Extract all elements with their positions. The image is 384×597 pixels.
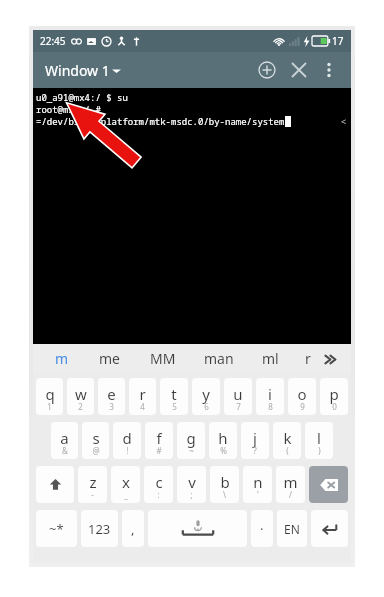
staticText: root@mx4:/ #: [36, 103, 101, 115]
button[interactable]: EN: [277, 510, 307, 547]
staticText: 6: [204, 401, 209, 412]
staticText: #: [156, 445, 162, 456]
button[interactable]: q: [36, 378, 63, 415]
staticText: k: [283, 428, 292, 448]
button[interactable]: r: [303, 346, 313, 371]
button[interactable]: l: [305, 422, 333, 459]
staticText: x: [122, 472, 130, 492]
staticText: a: [60, 428, 69, 448]
button[interactable]: MM: [148, 346, 178, 371]
staticText: %: [220, 445, 227, 456]
staticText: 17: [332, 34, 344, 48]
staticText: ,: [131, 520, 135, 538]
button[interactable]: 123: [81, 510, 118, 547]
button[interactable]: e: [98, 378, 125, 415]
staticText: 4: [140, 401, 145, 412]
button[interactable]: j: [241, 422, 269, 459]
button[interactable]: me: [97, 346, 122, 371]
staticText: <: [341, 115, 347, 127]
button[interactable]: d: [113, 422, 141, 459]
staticText: u: [233, 384, 243, 404]
button[interactable]: man: [202, 346, 236, 371]
staticText: z: [89, 472, 97, 492]
staticText: =/dev/block/platform/mtk-msdc.0/by-name/…: [36, 115, 285, 127]
staticText: w: [75, 384, 87, 404]
button[interactable]: m: [276, 466, 305, 503]
button[interactable]: Backspace: [309, 466, 348, 503]
button[interactable]: z: [78, 466, 107, 503]
button[interactable]: y: [192, 378, 220, 415]
button[interactable]: ,: [122, 510, 144, 547]
button[interactable]: s: [82, 422, 109, 459]
button[interactable]: Space: [148, 510, 247, 547]
staticText: ~: [189, 445, 194, 456]
button[interactable]: Shift: [36, 466, 74, 503]
staticText: &: [62, 445, 68, 456]
button[interactable]: ~*: [36, 510, 77, 547]
staticText: _: [124, 489, 128, 500]
staticText: -: [91, 489, 94, 500]
staticText: u0_a91@mx4:/ $ su: [36, 91, 128, 103]
button[interactable]: o: [288, 378, 316, 415]
staticText: n: [253, 472, 263, 492]
button[interactable]: ml: [260, 346, 281, 371]
staticText: ·: [260, 520, 264, 538]
staticText: ml: [262, 349, 279, 368]
staticText: !: [126, 445, 129, 456]
staticText: m: [283, 472, 298, 492]
button[interactable]: Window 1: [45, 61, 121, 80]
button[interactable]: b: [210, 466, 239, 503]
staticText: 7: [236, 401, 241, 412]
staticText: 1: [47, 401, 52, 412]
button[interactable]: m: [53, 346, 71, 371]
button[interactable]: k: [273, 422, 301, 459]
staticText: (: [286, 445, 289, 456]
staticText: 3: [109, 401, 114, 412]
button[interactable]: p: [320, 378, 348, 415]
staticText: me: [99, 349, 120, 368]
staticText: e: [107, 384, 116, 404]
button[interactable]: Close window: [283, 54, 315, 86]
button[interactable]: i: [256, 378, 284, 415]
staticText: i: [268, 384, 272, 404]
staticText: :: [157, 489, 160, 500]
button[interactable]: h: [209, 422, 237, 459]
staticText: EN: [284, 521, 300, 537]
button[interactable]: a: [51, 422, 78, 459]
staticText: h: [218, 428, 228, 448]
button[interactable]: x: [111, 466, 140, 503]
staticText: ;: [190, 489, 193, 500]
staticText: y: [202, 384, 210, 404]
staticText: /: [289, 489, 292, 500]
staticText: c: [155, 472, 163, 492]
button[interactable]: f: [145, 422, 173, 459]
button[interactable]: t: [160, 378, 188, 415]
button[interactable]: r: [129, 378, 156, 415]
staticText: 8: [268, 401, 273, 412]
staticText: 2: [78, 401, 83, 412]
button[interactable]: u: [224, 378, 252, 415]
staticText: g: [186, 428, 196, 448]
staticText: @: [92, 445, 100, 456]
button[interactable]: Enter: [311, 510, 348, 547]
staticText: Window 1: [45, 61, 110, 80]
button[interactable]: New window: [251, 54, 283, 86]
staticText: 9: [300, 401, 305, 412]
staticText: man: [204, 349, 234, 368]
staticText: o: [297, 384, 307, 404]
staticText: r: [305, 349, 311, 368]
staticText: 22:45: [40, 34, 66, 48]
button[interactable]: v: [177, 466, 206, 503]
button[interactable]: n: [243, 466, 272, 503]
button[interactable]: More options: [315, 56, 343, 84]
staticText: ): [318, 445, 321, 456]
button[interactable]: g: [177, 422, 205, 459]
staticText: j: [253, 428, 257, 448]
staticText: d: [122, 428, 132, 448]
button[interactable]: ·: [251, 510, 273, 547]
button[interactable]: More suggestions: [319, 347, 343, 371]
staticText: 0: [332, 401, 337, 412]
button[interactable]: u0_a91@mx4:/ $ su: [33, 88, 351, 344]
button[interactable]: w: [67, 378, 94, 415]
button[interactable]: c: [144, 466, 173, 503]
